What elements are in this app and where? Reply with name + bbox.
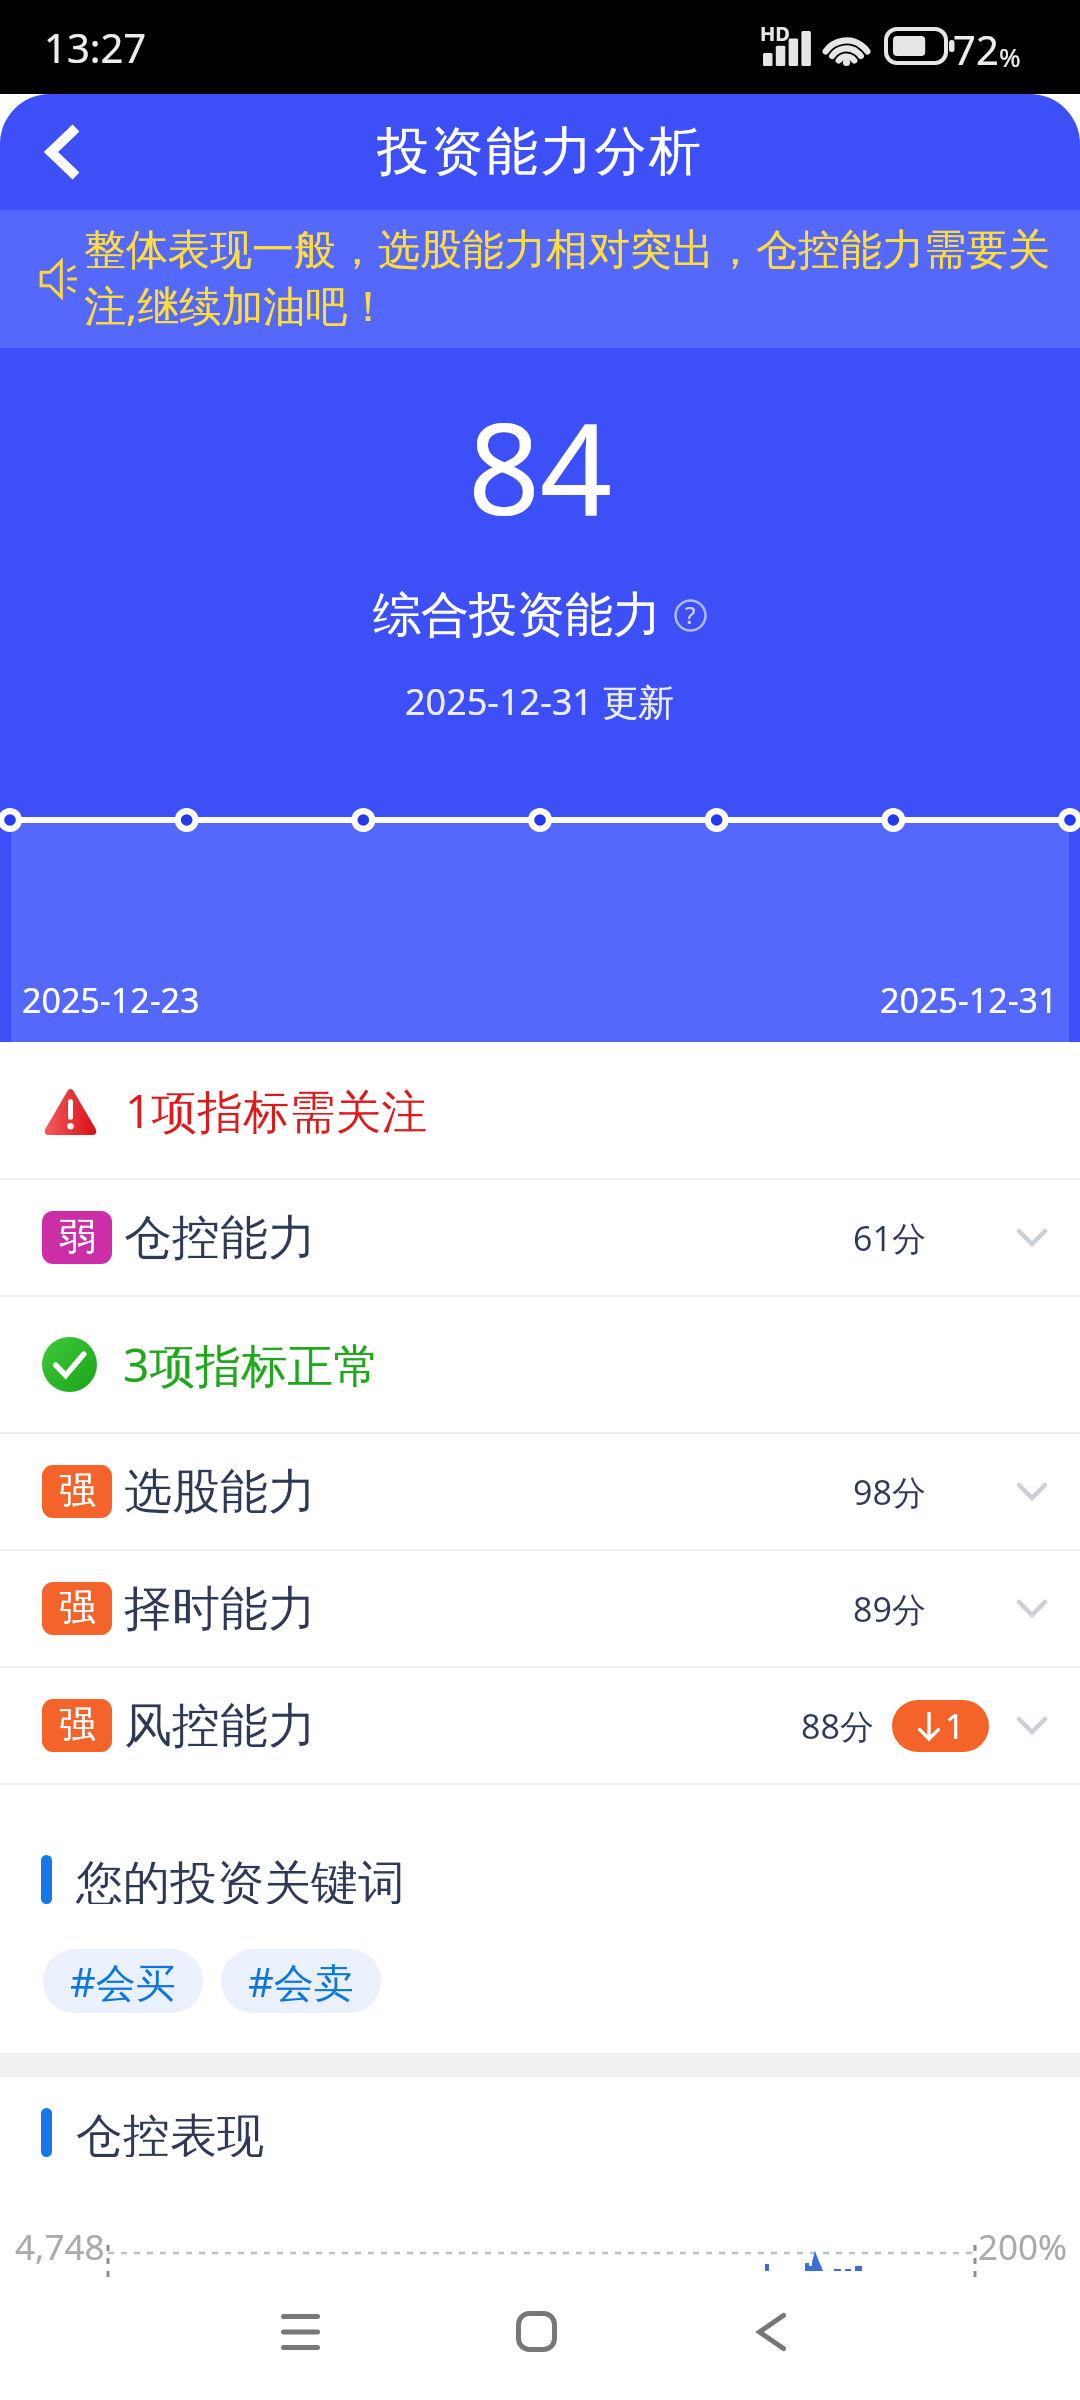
staticText: 61分 (853, 1215, 926, 1261)
staticText: 您的投资关键词 (76, 1854, 405, 1904)
staticText: 综合投资能力 (373, 585, 661, 645)
button[interactable]: #会买 (43, 1949, 203, 2013)
staticText: 89分 (853, 1586, 926, 1632)
staticText: 弱 (59, 1213, 96, 1260)
staticText: 强 (59, 1467, 96, 1514)
staticText: 强 (59, 1701, 96, 1748)
staticText: 72 (953, 22, 999, 76)
staticText: 2025-12-23 (22, 977, 200, 1023)
button[interactable]: Recents (240, 2282, 360, 2381)
button[interactable]: Back (711, 2282, 831, 2381)
staticText: 择时能力 (124, 1579, 316, 1639)
staticText: 98分 (853, 1469, 926, 1515)
staticText: HD (760, 20, 790, 47)
button[interactable]: 3项指标正常 (0, 1297, 1080, 1432)
staticText: 风控能力 (124, 1696, 316, 1756)
staticText: 仓控能力 (124, 1208, 316, 1268)
button[interactable]: Home (476, 2282, 596, 2381)
staticText: % (999, 39, 1021, 74)
staticText: 仓控表现 (76, 2107, 264, 2157)
button[interactable]: 弱 (0, 1180, 1080, 1295)
staticText: 88分 (801, 1703, 874, 1749)
staticText: 1项指标需关注 (125, 1079, 428, 1142)
staticText: 84 (468, 380, 613, 552)
staticText: 2025-12-31 (880, 977, 1058, 1023)
button[interactable]: Back (5, 94, 121, 210)
staticText: 1 (945, 1703, 965, 1749)
staticText: 选股能力 (124, 1462, 316, 1522)
button[interactable]: #会卖 (221, 1949, 381, 2013)
staticText: ? (685, 598, 696, 631)
staticText: 200% (978, 2223, 1068, 2271)
staticText: 整体表现一般，选股能力相对突出，仓控能力需要关注,继续加油吧！ (84, 224, 1056, 334)
button[interactable]: 强 (0, 1551, 1080, 1666)
button[interactable]: 强 (0, 1434, 1080, 1549)
staticText: 4,748 (15, 2223, 105, 2271)
button[interactable]: 1项指标需关注 (0, 1042, 1080, 1178)
button[interactable]: 强 (0, 1668, 1080, 1783)
staticText: 13:27 (44, 20, 147, 74)
staticText: 投资能力分析 (377, 119, 704, 185)
staticText: #会买 (70, 1954, 176, 2009)
staticText: 强 (59, 1584, 96, 1631)
staticText: #会卖 (248, 1954, 354, 2009)
staticText: 3项指标正常 (123, 1333, 380, 1396)
staticText: 2025-12-31 更新 (405, 677, 675, 726)
button[interactable]: Help (674, 599, 707, 632)
